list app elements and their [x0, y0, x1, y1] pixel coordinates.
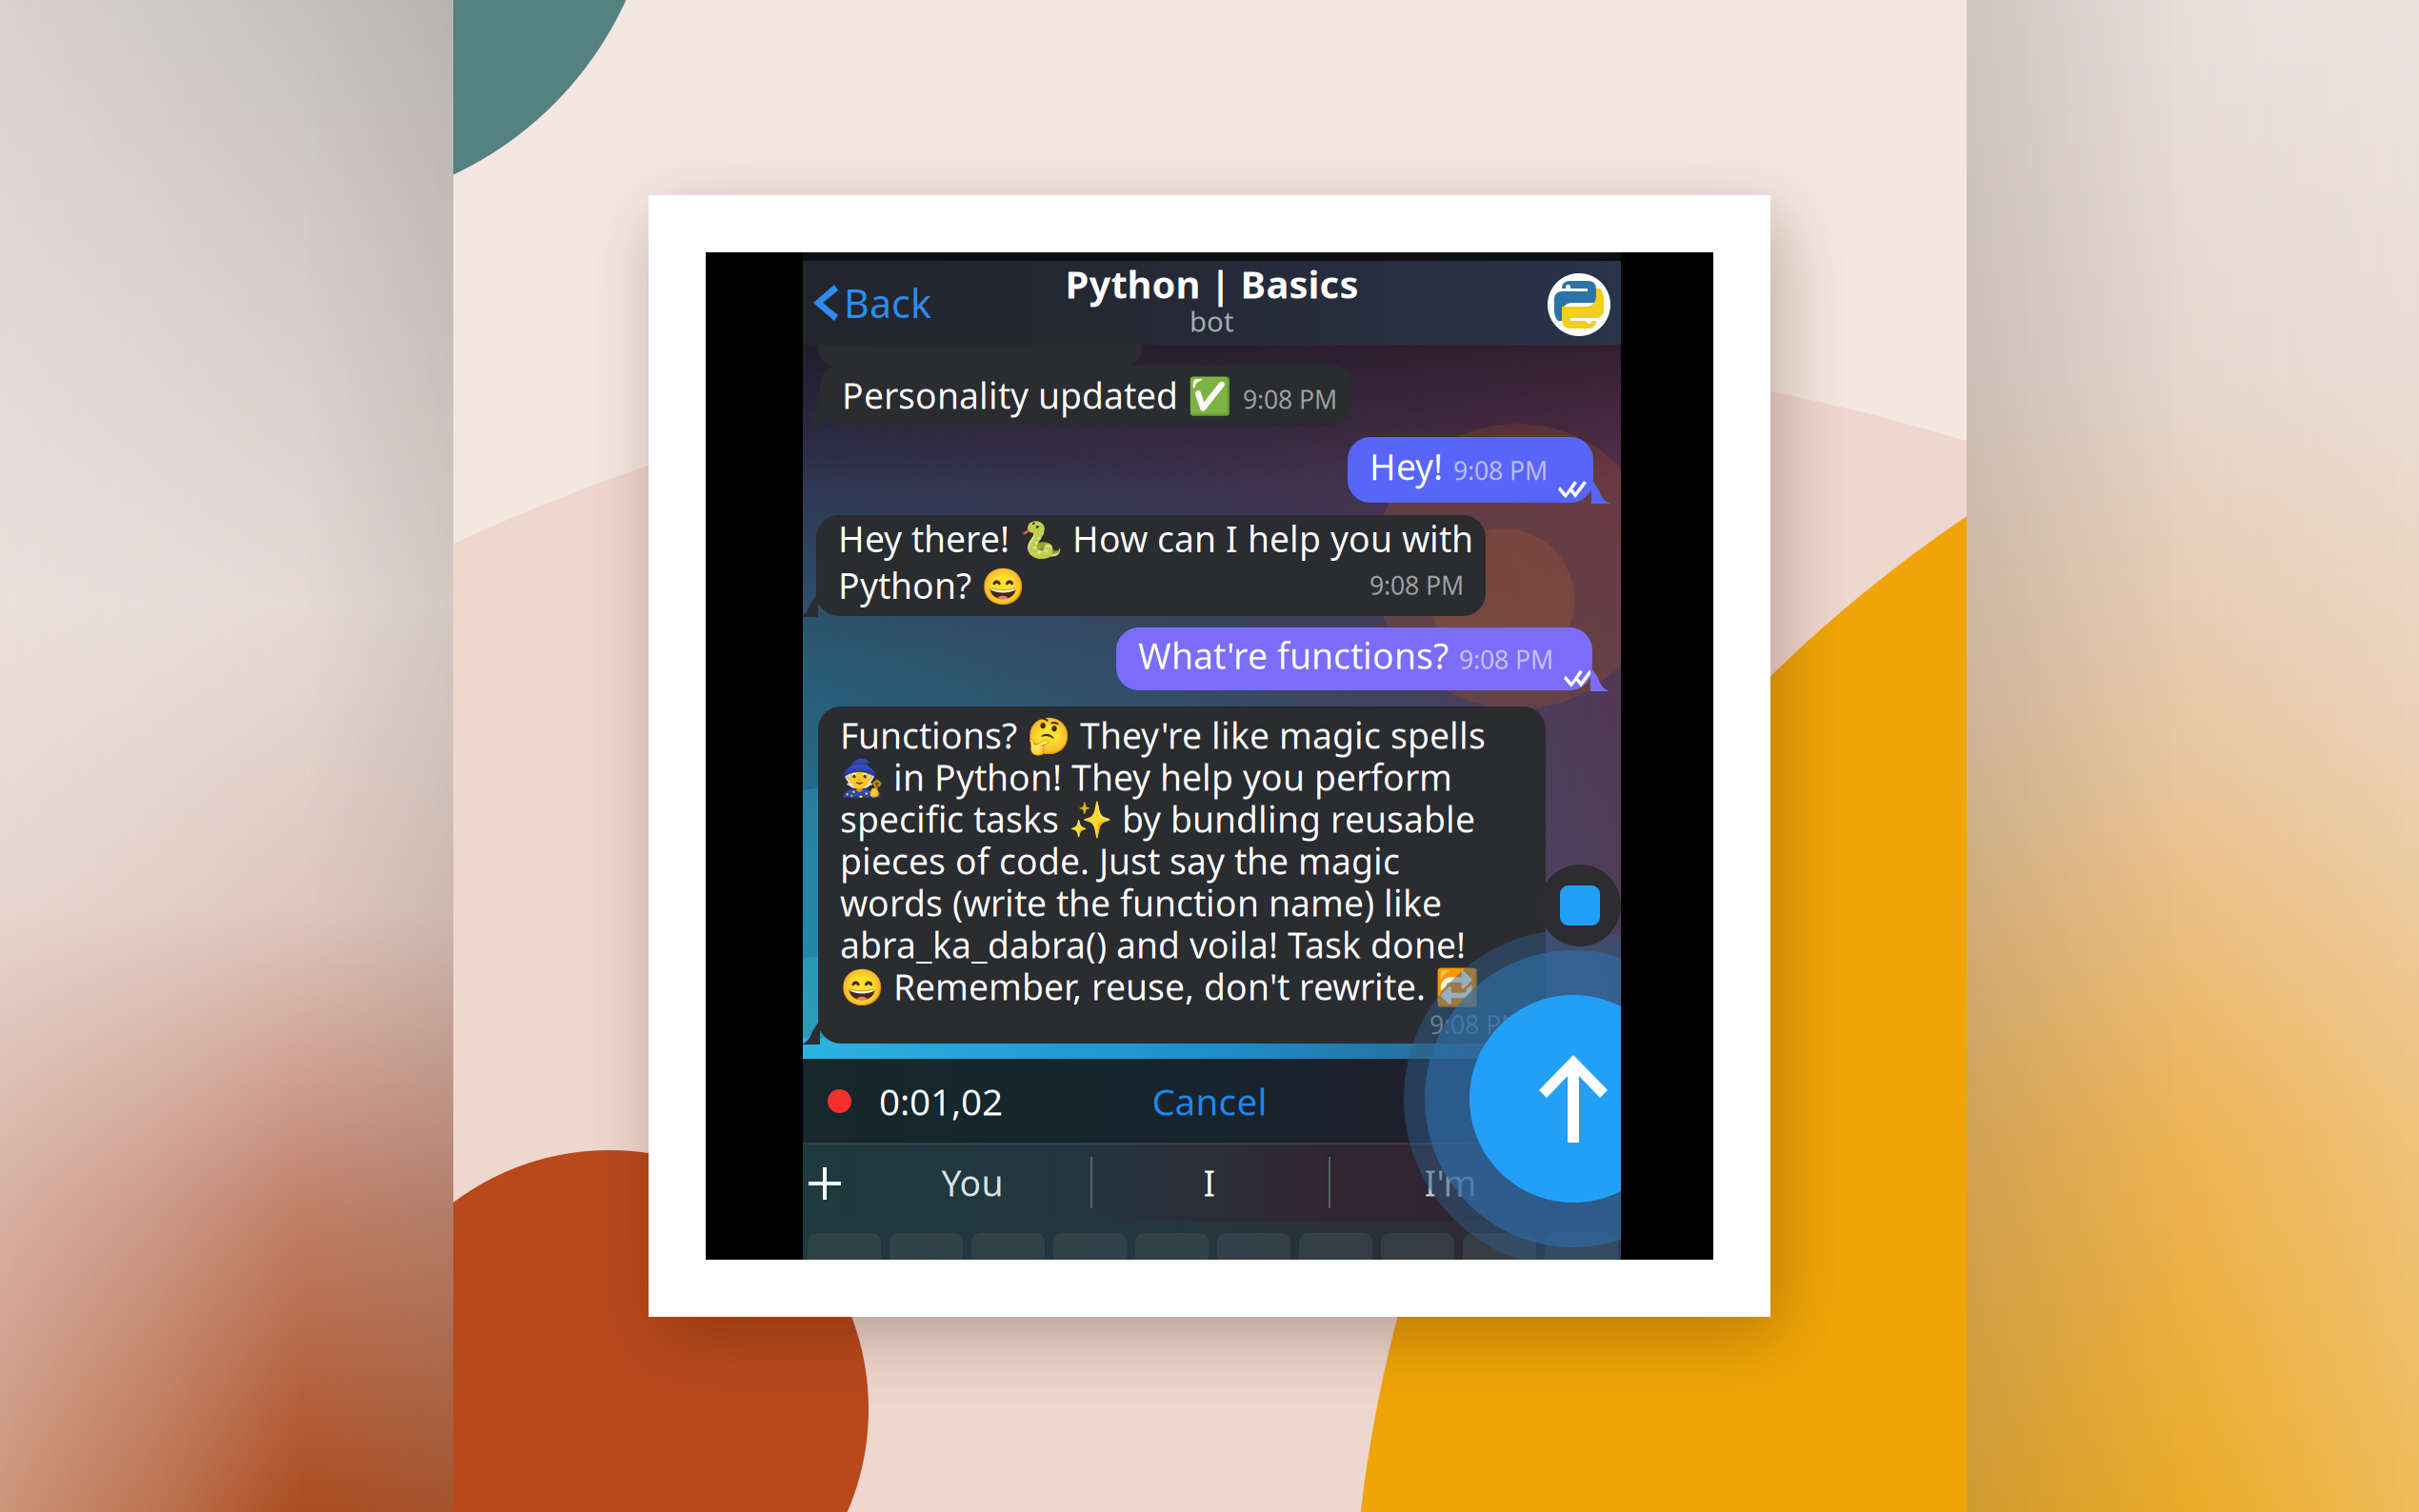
button[interactable]: Cancel — [1124, 1070, 1295, 1133]
staticText: 🧙 in Python! They help you perform — [840, 753, 1452, 801]
staticText: Personality updated ✅ — [842, 372, 1231, 419]
staticText: Cancel — [1152, 1077, 1267, 1126]
staticText: Back — [844, 277, 931, 329]
button[interactable]: I'm — [1350, 1149, 1550, 1216]
staticText: bot — [1190, 302, 1234, 339]
staticText: specific tasks ✨ by bundling reusable — [840, 795, 1475, 842]
staticText: 9:08 PM — [1369, 568, 1464, 602]
staticText: 9:08 PM — [1429, 1008, 1524, 1041]
staticText: abra_ka_dabra() and voila! Task done! — [840, 921, 1466, 968]
button[interactable]: Chat info — [1548, 273, 1610, 336]
button[interactable]: Back — [803, 261, 931, 345]
button[interactable]: Attach — [793, 1149, 854, 1216]
staticText: pieces of code. Just say the magic — [840, 837, 1400, 884]
staticText: I'm — [1424, 1159, 1477, 1206]
staticText: 0:01,02 — [879, 1077, 1003, 1126]
staticText: words (write the function name) like — [840, 879, 1442, 926]
staticText: What're functions? — [1138, 632, 1449, 679]
staticText: Hey there! 🐍 How can I help you with — [838, 515, 1473, 562]
button[interactable]: I — [1110, 1149, 1309, 1216]
staticText: Python? 😄 — [838, 561, 1025, 609]
button[interactable]: Stop recording — [1539, 865, 1621, 946]
button[interactable]: Send — [1469, 995, 1677, 1203]
staticText: 😄 Remember, reuse, don't rewrite. 🔁 — [840, 963, 1479, 1010]
button[interactable]: You — [872, 1149, 1072, 1216]
staticText: I — [1203, 1159, 1216, 1206]
staticText: Python | Basics — [1065, 258, 1359, 309]
staticText: Functions? 🤔 They're like magic spells — [840, 711, 1486, 759]
staticText: Hey! — [1369, 443, 1443, 490]
staticText: 9:08 PM — [1453, 453, 1548, 487]
staticText: 9:08 PM — [1459, 642, 1553, 676]
staticText: You — [941, 1159, 1003, 1206]
staticText: 9:08 PM — [1243, 382, 1337, 416]
